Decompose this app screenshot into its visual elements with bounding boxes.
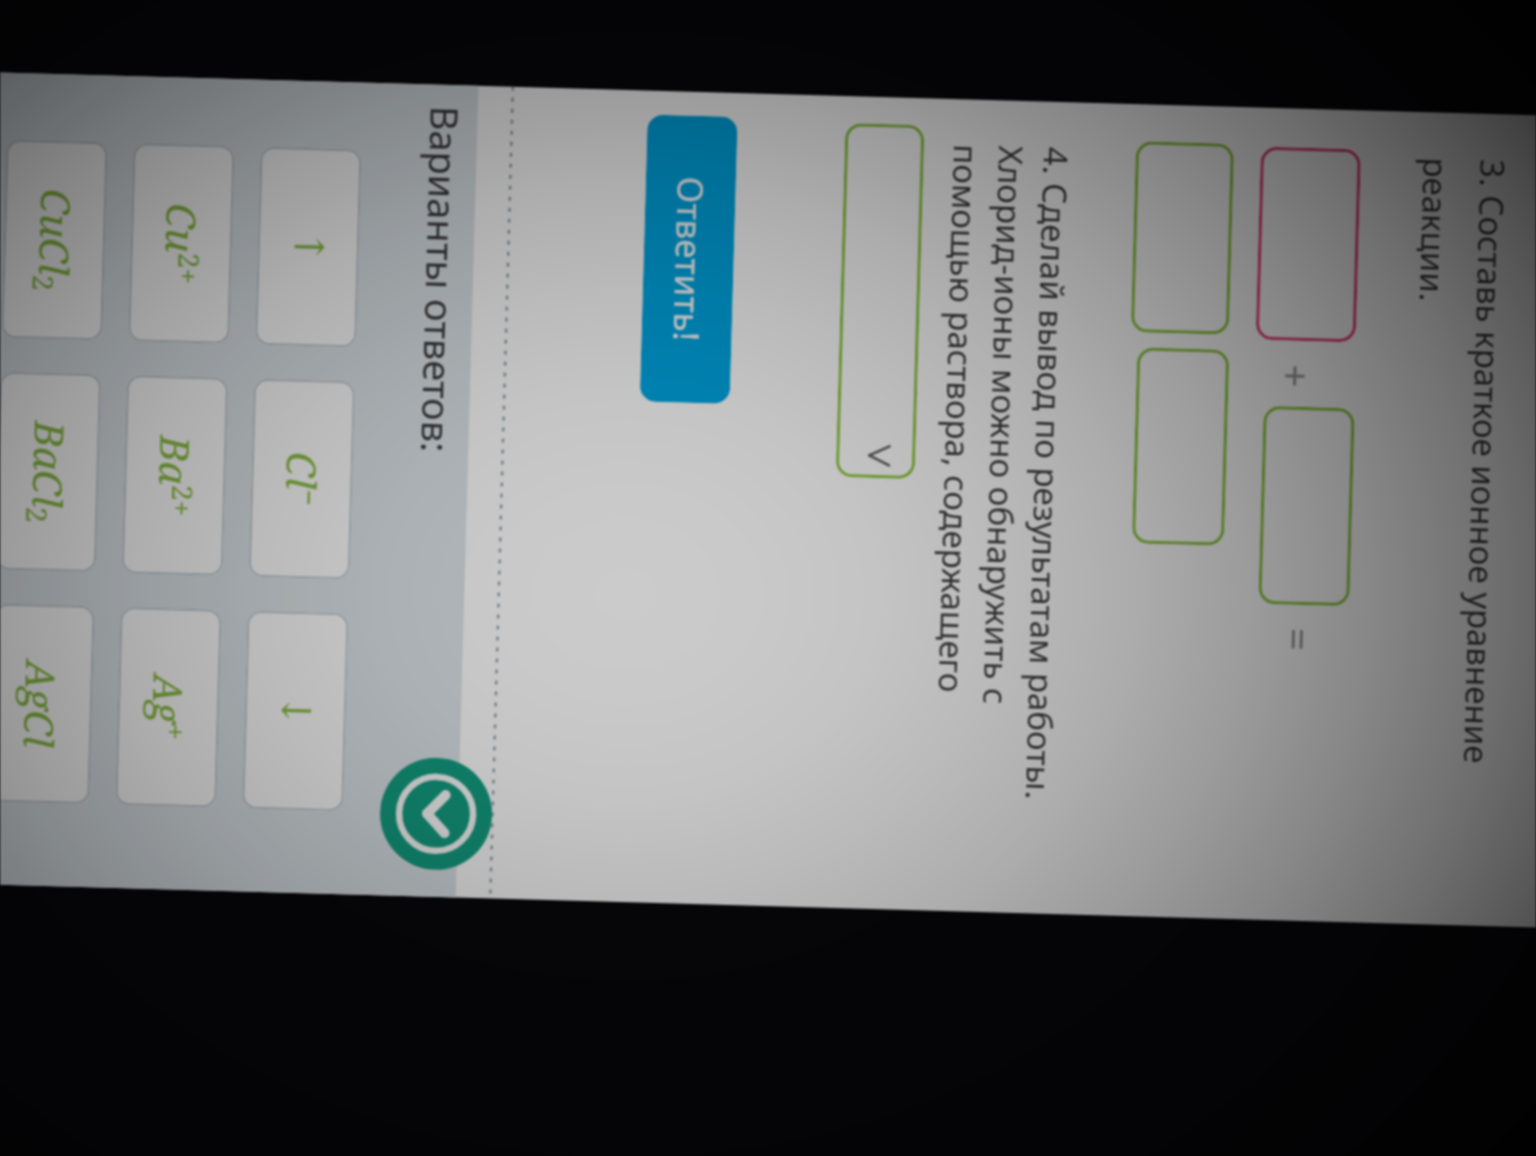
staticText: 3. Составь краткое ионное уравнение: [1454, 158, 1516, 764]
staticText: Cu2+: [153, 203, 210, 285]
staticText: =: [1272, 627, 1327, 652]
button[interactable]: ↓: [242, 610, 349, 811]
button[interactable]: Поле ввода: [1258, 406, 1355, 606]
staticText: Ответить!: [662, 176, 715, 342]
staticText: BaCl2: [17, 420, 78, 525]
button[interactable]: Поле ввода: [1256, 147, 1361, 342]
staticText: ↑: [284, 229, 332, 265]
staticText: Варианты ответов:: [410, 105, 472, 453]
staticText: AgCl: [13, 660, 69, 749]
staticText: CuCl2: [23, 188, 84, 292]
staticText: Хлорид-ионы можно обнаружить с: [973, 145, 1034, 705]
button[interactable]: BaCl2: [0, 371, 101, 572]
button[interactable]: CuCl2: [1, 140, 108, 340]
button[interactable]: Поле ввода: [1131, 141, 1234, 335]
staticText: +: [1269, 364, 1324, 388]
button[interactable]: Ba2+: [122, 375, 228, 576]
staticText: помощью раствора, содержащего: [929, 144, 989, 694]
button[interactable]: AgCl: [0, 603, 95, 804]
button[interactable]: Ag+: [115, 607, 222, 808]
staticText: Ag+: [140, 674, 197, 741]
staticText: Cl−: [274, 451, 330, 507]
button[interactable]: Дальше: [378, 756, 494, 871]
button[interactable]: Cl−: [249, 379, 355, 579]
button[interactable]: Поле ввода: [1132, 347, 1229, 546]
staticText: Ba2+: [146, 435, 203, 517]
button[interactable]: Ответить!: [640, 114, 738, 404]
button[interactable]: ↑: [255, 147, 362, 347]
button[interactable]: Выбрать вариант: [836, 123, 924, 479]
button[interactable]: Cu2+: [128, 143, 235, 344]
staticText: 4. Сделай вывод по результатам работы.: [1016, 146, 1079, 800]
staticText: ↓: [271, 693, 319, 728]
staticText: реакции.: [1410, 157, 1459, 303]
